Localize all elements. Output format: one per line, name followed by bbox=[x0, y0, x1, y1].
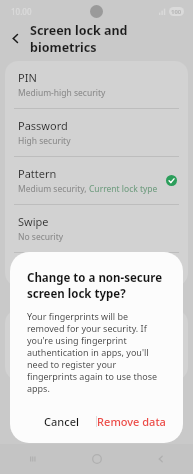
staticText: Face recognition bbox=[18, 319, 104, 334]
staticText: Cancel bbox=[44, 414, 79, 429]
staticText: Screen lock and biometrics bbox=[30, 22, 193, 55]
staticText: Current lock type bbox=[89, 183, 158, 195]
staticText: 10.00 bbox=[11, 6, 32, 17]
staticText: Biometrics bbox=[13, 294, 54, 305]
button[interactable]: PIN bbox=[5, 61, 188, 108]
staticText: Change to a non-secure screen lock type? bbox=[27, 270, 166, 301]
button[interactable]: Remove data bbox=[97, 408, 166, 434]
staticText: Remove data bbox=[97, 414, 166, 429]
staticText: 100 bbox=[171, 8, 182, 16]
button[interactable]: None bbox=[5, 253, 188, 286]
staticText: None bbox=[18, 262, 47, 277]
staticText: PIN bbox=[18, 70, 37, 85]
staticText: Your fingerprints will be removed for yo… bbox=[27, 310, 166, 394]
staticText: Password bbox=[18, 118, 68, 133]
button[interactable]: Cancel bbox=[27, 408, 96, 434]
button[interactable]: Swipe bbox=[5, 205, 188, 252]
button[interactable]: Password bbox=[5, 109, 188, 156]
button[interactable]: Back bbox=[0, 22, 30, 55]
staticText: No security bbox=[18, 231, 64, 243]
staticText: Medium security, bbox=[18, 183, 89, 195]
staticText: Register your face. bbox=[18, 336, 93, 348]
button[interactable]: Face recognition bbox=[5, 310, 188, 357]
staticText: Swipe bbox=[18, 214, 49, 229]
button[interactable]: Pattern bbox=[5, 157, 188, 204]
staticText: Pattern bbox=[18, 166, 57, 181]
staticText: High security bbox=[18, 135, 71, 147]
staticText: Medium-high security bbox=[18, 87, 106, 99]
